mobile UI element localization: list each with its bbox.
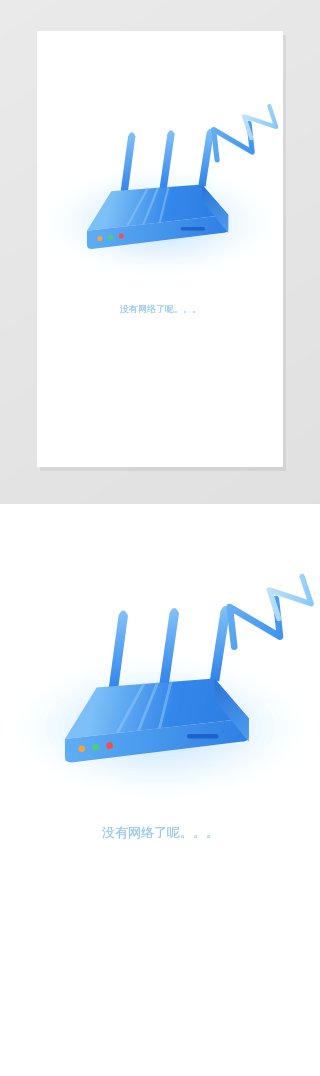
staticText: 没有网络了呢。。。 — [102, 824, 219, 840]
button[interactable]: No network illustration — [0, 504, 320, 1076]
button[interactable]: No network illustration — [37, 31, 283, 467]
staticText: 没有网络了呢。。。 — [120, 303, 201, 314]
other: No network illustration — [37, 31, 283, 467]
other: No network illustration — [0, 504, 320, 1076]
